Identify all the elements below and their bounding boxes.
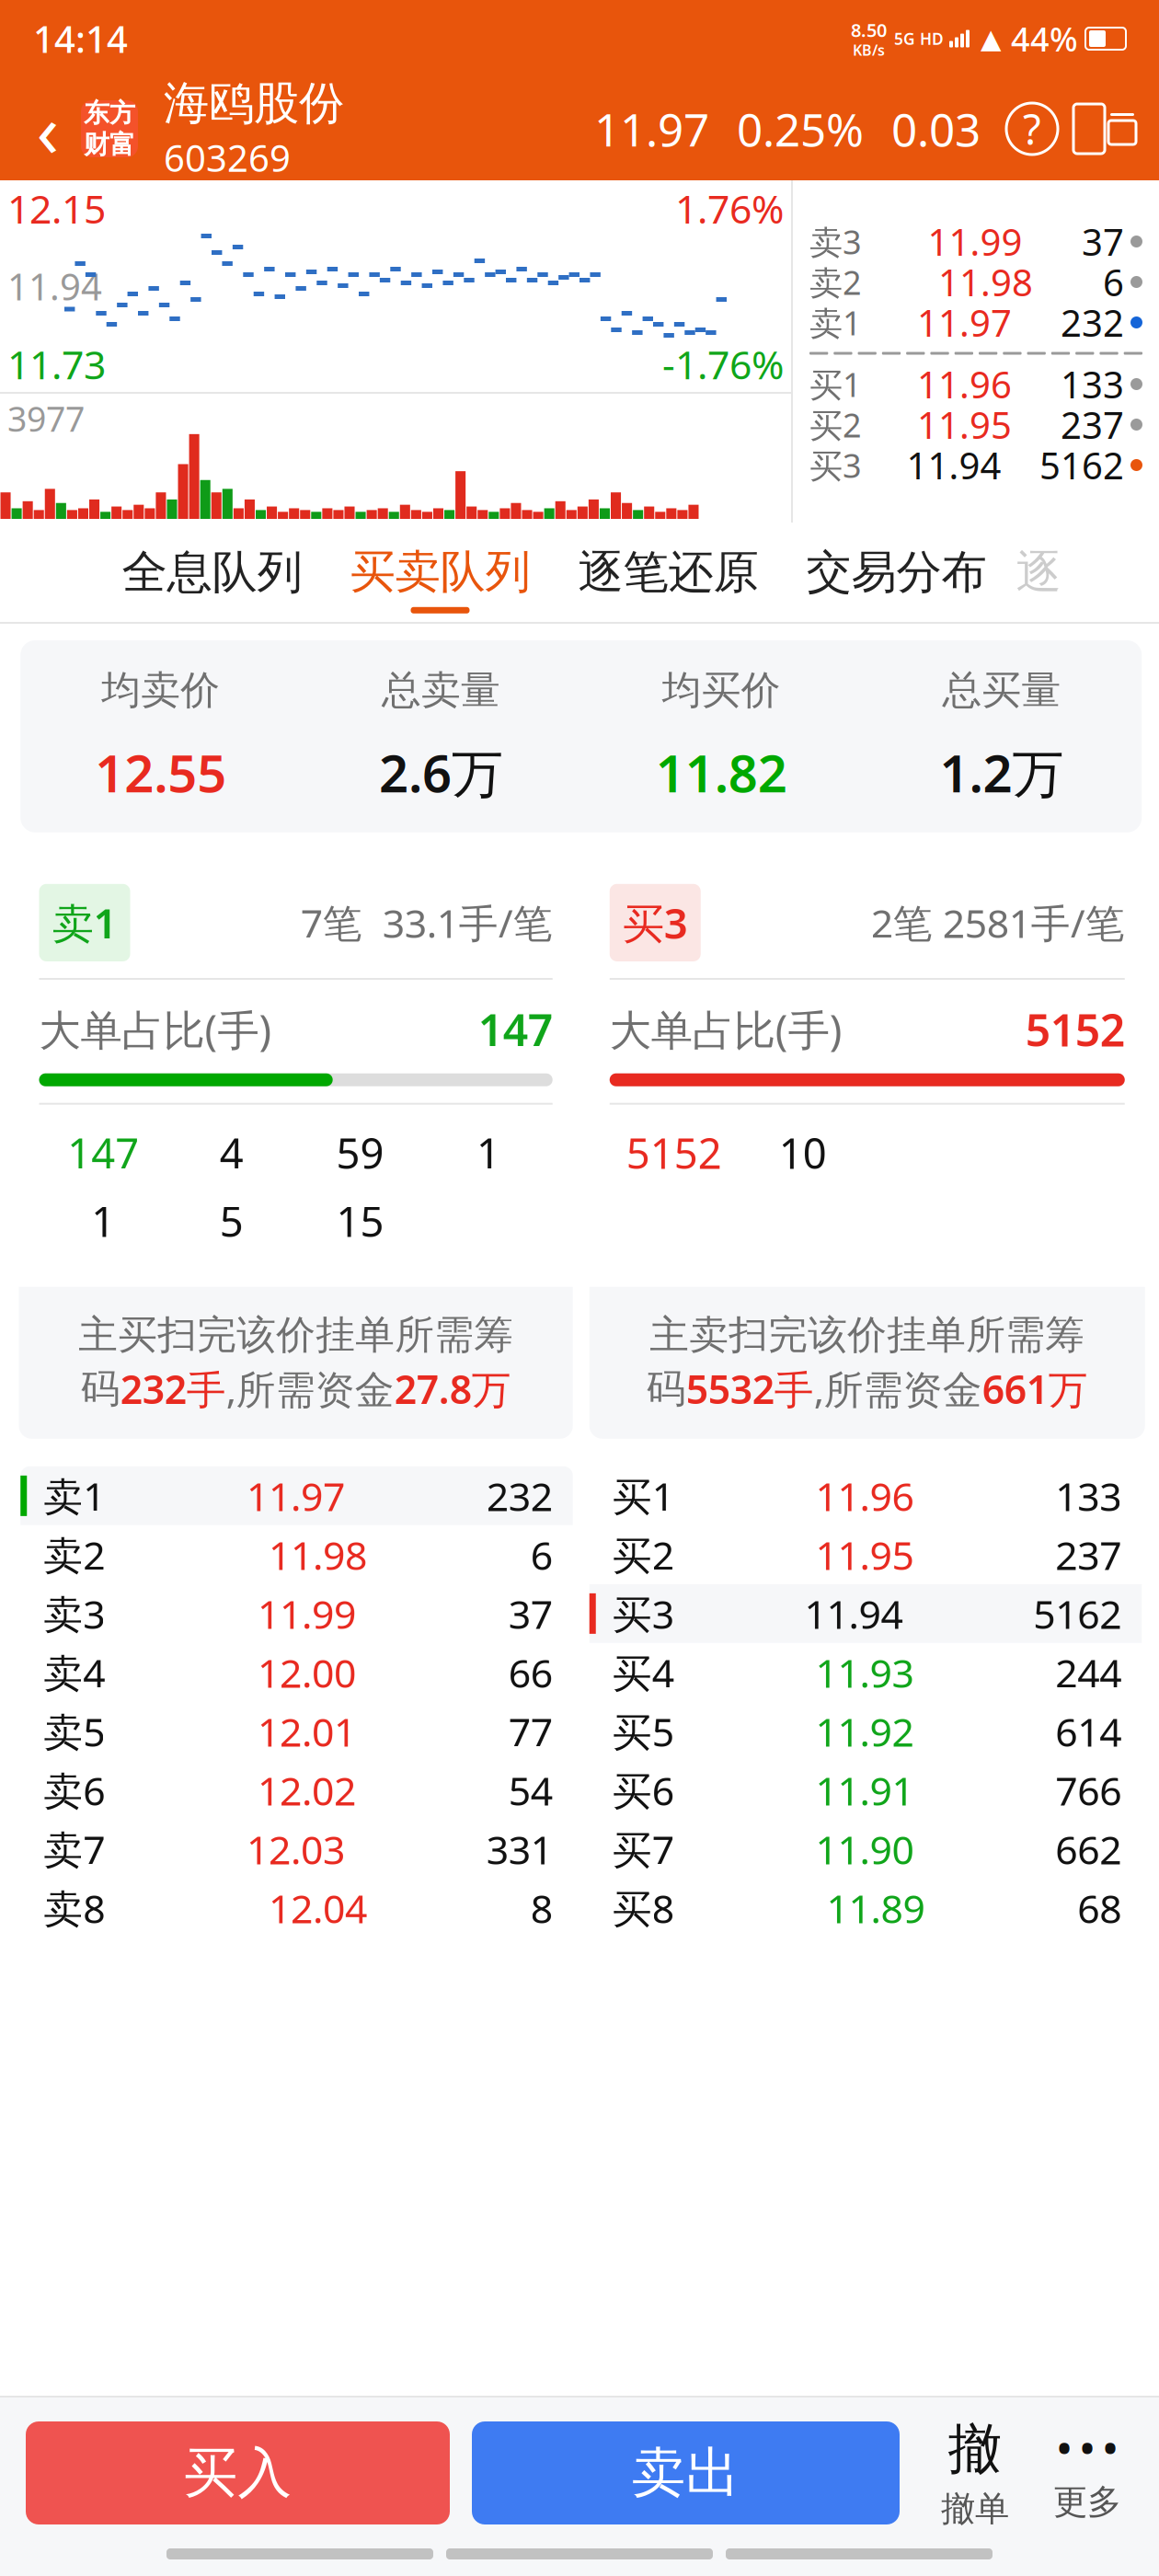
staticText: 5G HD xyxy=(894,28,944,49)
staticText: 码 xyxy=(81,1365,120,1413)
staticText: 11.94 xyxy=(7,262,102,310)
staticText: 卖1 xyxy=(43,1470,105,1522)
staticText: ,所需资金 xyxy=(226,1363,394,1415)
staticText: 133 xyxy=(1061,360,1124,408)
button[interactable]: 逐笔还原 xyxy=(554,524,782,620)
button[interactable]: 全息队列 xyxy=(98,524,326,620)
button[interactable]: • • • xyxy=(1036,2418,1139,2528)
staticText: 11.97 xyxy=(247,1470,345,1522)
staticText: 海鸥股份 xyxy=(164,76,344,131)
staticText: 更多 xyxy=(1053,2481,1121,2523)
staticText: 5532手 xyxy=(686,1363,814,1415)
staticText: 买7 xyxy=(612,1823,674,1875)
staticText: 11.98 xyxy=(269,1529,367,1581)
staticText: 5162 xyxy=(1039,441,1124,489)
staticText: 59 xyxy=(336,1125,384,1180)
staticText: 662 xyxy=(1055,1823,1121,1875)
button[interactable]: 东方财富 xyxy=(81,100,138,157)
staticText: 买8 xyxy=(612,1882,674,1934)
staticText: 买6 xyxy=(612,1764,674,1816)
staticText: 15 xyxy=(336,1193,384,1249)
staticText: 37 xyxy=(508,1587,553,1640)
staticText: 37 xyxy=(1082,217,1124,266)
staticText: 买2 xyxy=(809,403,862,447)
staticText: 11.95 xyxy=(815,1529,914,1581)
staticText: 11.96 xyxy=(815,1470,914,1522)
staticText: 买3 xyxy=(612,1587,674,1640)
staticText: 1 xyxy=(476,1125,500,1180)
staticText: 主卖扫完该价挂单所需筹 xyxy=(650,1311,1085,1359)
staticText: 12.03 xyxy=(247,1823,345,1875)
staticText: 卖3 xyxy=(809,220,862,263)
staticText: 68 xyxy=(1077,1882,1121,1934)
staticText: 逐笔还原 xyxy=(578,544,758,600)
staticText: 1 xyxy=(91,1193,115,1249)
staticText: 卖2 xyxy=(43,1529,105,1581)
staticText: 5152 xyxy=(626,1125,722,1180)
staticText: 卖7 xyxy=(43,1823,105,1875)
staticText: 766 xyxy=(1055,1764,1121,1816)
staticText: 卖1 xyxy=(809,300,862,344)
staticText: 撤 xyxy=(948,2416,1002,2482)
staticText: 8 xyxy=(531,1882,553,1934)
staticText: 232 xyxy=(1061,298,1124,347)
button[interactable]: 交易分布 xyxy=(782,524,1010,620)
staticText: 11.95 xyxy=(917,400,1012,449)
staticText: 7笔 33.1手/笔 xyxy=(301,897,553,949)
staticText: 5 xyxy=(220,1193,244,1249)
staticText: 主买扫完该价挂单所需筹 xyxy=(78,1311,513,1359)
staticText: • • • xyxy=(1057,2423,1117,2472)
staticText: 614 xyxy=(1055,1705,1121,1757)
staticText: 603269 xyxy=(164,133,291,182)
staticText: 0.25% xyxy=(737,99,864,159)
staticText: 11.97 xyxy=(594,99,709,159)
staticText: 1.76% xyxy=(675,182,784,234)
staticText: 全息队列 xyxy=(122,544,302,600)
staticText: 买入 xyxy=(184,2440,292,2506)
staticText: 27.8万 xyxy=(394,1363,511,1415)
button[interactable]: 卖出 xyxy=(472,2421,900,2524)
staticText: 11.99 xyxy=(928,217,1022,266)
staticText: 11.73 xyxy=(7,338,106,390)
button[interactable]: 买入 xyxy=(26,2421,450,2524)
staticText: 11.99 xyxy=(258,1587,356,1640)
staticText: 12.01 xyxy=(258,1705,356,1757)
staticText: 133 xyxy=(1055,1470,1121,1522)
staticText: 总买量 xyxy=(942,666,1061,714)
staticText: 买2 xyxy=(612,1529,674,1581)
staticText: 237 xyxy=(1055,1529,1121,1581)
staticText: 均买价 xyxy=(662,666,781,714)
staticText: -1.76% xyxy=(662,338,784,390)
staticText: 11.89 xyxy=(826,1882,925,1934)
staticText: 6 xyxy=(531,1529,553,1581)
button[interactable]: Layout xyxy=(1067,94,1142,164)
button[interactable]: 买卖队列 xyxy=(326,524,554,621)
staticText: 237 xyxy=(1061,400,1124,449)
staticText: 12.02 xyxy=(258,1764,356,1816)
button[interactable]: Help xyxy=(997,94,1067,164)
staticText: ? xyxy=(1023,101,1041,156)
button[interactable]: Back xyxy=(15,87,81,170)
staticText: 卖2 xyxy=(809,260,862,304)
staticText: 11.90 xyxy=(815,1823,914,1875)
staticText: 12.15 xyxy=(7,182,106,234)
button[interactable]: 撤 xyxy=(924,2418,1027,2528)
staticText: 买5 xyxy=(612,1705,674,1757)
staticText: 买卖队列 xyxy=(350,544,530,600)
staticText: 3977 xyxy=(7,396,85,441)
staticText: 买4 xyxy=(612,1646,674,1699)
staticText: 4 xyxy=(220,1125,244,1180)
staticText: ‹ xyxy=(36,80,59,178)
staticText: 2.6万 xyxy=(379,738,503,807)
staticText: 0.03 xyxy=(891,99,981,159)
staticText: 11.92 xyxy=(815,1705,914,1757)
staticText: 均卖价 xyxy=(101,666,220,714)
staticText: KB/s xyxy=(853,40,885,60)
staticText: 11.94 xyxy=(907,441,1001,489)
staticText: 卖出 xyxy=(631,2440,740,2506)
staticText: 总卖量 xyxy=(382,666,500,714)
staticText: 逐 xyxy=(1016,544,1061,600)
staticText: 卖4 xyxy=(43,1646,105,1699)
staticText: 8.50 xyxy=(851,18,887,42)
staticText: 东方 xyxy=(84,97,135,129)
